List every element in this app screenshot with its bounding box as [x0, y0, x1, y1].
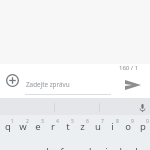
- button[interactable]: d: [38, 140, 54, 150]
- staticText: 7: [101, 118, 104, 125]
- staticText: 2: [26, 118, 29, 125]
- staticText: p: [140, 120, 146, 133]
- staticText: 6: [86, 118, 89, 125]
- staticText: 8: [116, 118, 119, 125]
- staticText: j: [105, 145, 108, 150]
- staticText: u: [95, 120, 101, 133]
- staticText: w: [19, 120, 27, 133]
- button[interactable]: Voice input: [132, 99, 150, 116]
- button[interactable]: 0: [135, 115, 150, 140]
- staticText: 0: [146, 118, 149, 125]
- staticText: f: [60, 145, 64, 150]
- button[interactable]: f: [54, 140, 69, 150]
- staticText: o: [125, 120, 131, 133]
- button[interactable]: h: [84, 140, 99, 150]
- button[interactable]: 9: [120, 115, 135, 140]
- staticText: Zadejte zprávu: [26, 80, 70, 89]
- staticText: t: [66, 120, 70, 133]
- staticText: i: [111, 120, 114, 133]
- staticText: 5: [71, 118, 74, 125]
- staticText: l: [135, 145, 138, 150]
- staticText: h: [89, 145, 95, 150]
- staticText: z: [80, 120, 85, 133]
- staticText: 9: [131, 118, 134, 125]
- staticText: 160 / 1: [119, 64, 139, 72]
- button[interactable]: 1: [0, 115, 15, 140]
- button[interactable]: l: [129, 140, 144, 150]
- button[interactable]: 3: [30, 115, 45, 140]
- button[interactable]: 8: [105, 115, 120, 140]
- staticText: 4: [56, 118, 59, 125]
- staticText: r: [51, 120, 55, 133]
- button[interactable]: Add attachment: [0, 68, 24, 92]
- button[interactable]: 6: [75, 115, 90, 140]
- button[interactable]: j: [99, 140, 114, 150]
- staticText: d: [43, 145, 49, 150]
- staticText: e: [35, 120, 41, 133]
- staticText: q: [5, 120, 11, 133]
- staticText: k: [119, 145, 125, 150]
- staticText: 3: [41, 118, 44, 125]
- button[interactable]: 7: [90, 115, 105, 140]
- button[interactable]: k: [114, 140, 129, 150]
- button[interactable]: 5: [60, 115, 75, 140]
- button[interactable]: 2: [15, 115, 30, 140]
- button[interactable]: Send: [120, 72, 145, 97]
- button[interactable]: 4: [45, 115, 60, 140]
- staticText: 1: [11, 118, 14, 125]
